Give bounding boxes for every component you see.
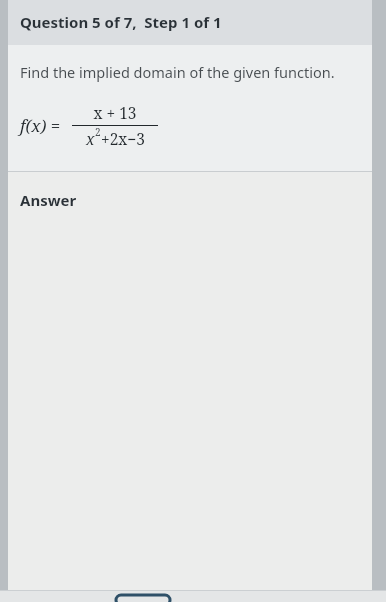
button[interactable]: Submit answer — [115, 594, 171, 602]
staticText: 2 — [95, 125, 101, 139]
button[interactable]: Question 5 of 7, Step 1 of 1 — [8, 0, 372, 45]
staticText: Question 5 of 7, Step 1 of 1 — [20, 12, 222, 32]
staticText: Find the implied domain of the given fun… — [20, 62, 335, 82]
staticText: x — [86, 128, 95, 149]
staticText: +2x−3 — [101, 128, 145, 149]
staticText: f(x) = — [20, 114, 61, 137]
button[interactable]: Answer — [20, 190, 77, 210]
staticText: x + 13 — [93, 102, 137, 123]
